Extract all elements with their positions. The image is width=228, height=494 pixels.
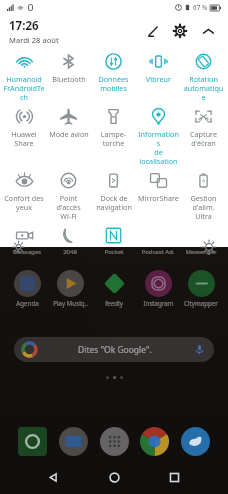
button[interactable]: Téléphone (18, 427, 47, 456)
button[interactable]: Rotation automatique (181, 52, 226, 102)
button[interactable]: Lampe-torche (91, 107, 136, 148)
staticText: Bluetooth (52, 74, 86, 84)
staticText: 2048 (49, 248, 91, 256)
staticText: Vibreur (146, 74, 171, 84)
staticText: Messenger (180, 248, 222, 256)
staticText: Rotation automatique (182, 74, 225, 102)
staticText: Dites "Ok Google". (78, 344, 152, 356)
staticText: MirrorShare (138, 193, 179, 203)
staticText: 17:26 (9, 18, 39, 34)
button[interactable]: Ne pas déranger (46, 226, 91, 247)
staticText: Point d'accès Wi-Fi (47, 193, 90, 221)
button[interactable]: Capture vidéo d'écran (2, 226, 46, 247)
staticText: Podcast Ad. (137, 248, 179, 256)
button[interactable]: Capture d'écran (181, 107, 226, 148)
button[interactable]: Accueil (108, 471, 121, 484)
button[interactable]: Humanoid FrAndroidTech (2, 52, 46, 102)
button[interactable]: Twitter (181, 427, 210, 456)
staticText: Instagram (143, 299, 174, 307)
staticText: Pocket (93, 248, 135, 256)
staticText: Citymapper (184, 299, 218, 307)
button[interactable]: Informations de localisation (136, 107, 181, 166)
staticText: Mardi 28 août (9, 35, 59, 45)
button[interactable]: Gestion d'alim. Ultra (181, 171, 226, 221)
button[interactable]: NFC (91, 226, 136, 247)
button[interactable]: Retour (47, 471, 60, 484)
staticText: Capture d'écran (190, 129, 217, 148)
button[interactable]: Dock de navigation (91, 171, 136, 212)
staticText: Messages (6, 248, 48, 256)
button[interactable]: Point d'accès Wi-Fi (46, 171, 91, 221)
button[interactable]: Paramètres (169, 20, 191, 42)
button[interactable]: Applications (100, 427, 129, 456)
button[interactable]: Confort des yeux (2, 171, 46, 212)
staticText: Gestion d'alim. Ultra (182, 193, 225, 221)
staticText: 67 % (193, 3, 208, 12)
staticText: Play Musiq.. (53, 299, 88, 307)
button[interactable]: Modifier (141, 20, 163, 42)
button[interactable]: Mode avion (46, 107, 91, 139)
button[interactable]: Vibreur (136, 52, 181, 84)
button[interactable]: Dites "Ok Google". (14, 337, 214, 362)
staticText: Huawei Share (3, 129, 45, 148)
staticText: Mode avion (49, 129, 89, 139)
button[interactable]: Récents (168, 471, 181, 484)
staticText: Données mobiles (98, 74, 129, 93)
staticText: Informations de localisation (137, 129, 180, 166)
button[interactable]: E-mail (59, 427, 88, 456)
button[interactable]: Bluetooth (46, 52, 91, 84)
staticText: Confort des yeux (4, 193, 44, 212)
button[interactable]: Huawei Share (2, 107, 46, 148)
button[interactable]: Chrome (140, 427, 169, 456)
button[interactable]: Données mobiles (91, 52, 136, 93)
staticText: Dock de navigation (96, 193, 132, 212)
button[interactable]: Réduire (197, 20, 219, 42)
button[interactable]: MirrorShare (136, 171, 181, 203)
staticText: Lampe-torche (92, 129, 135, 148)
staticText: feedly (105, 299, 123, 307)
staticText: Humanoid FrAndroidTech (3, 74, 45, 102)
staticText: Agenda (16, 299, 39, 307)
